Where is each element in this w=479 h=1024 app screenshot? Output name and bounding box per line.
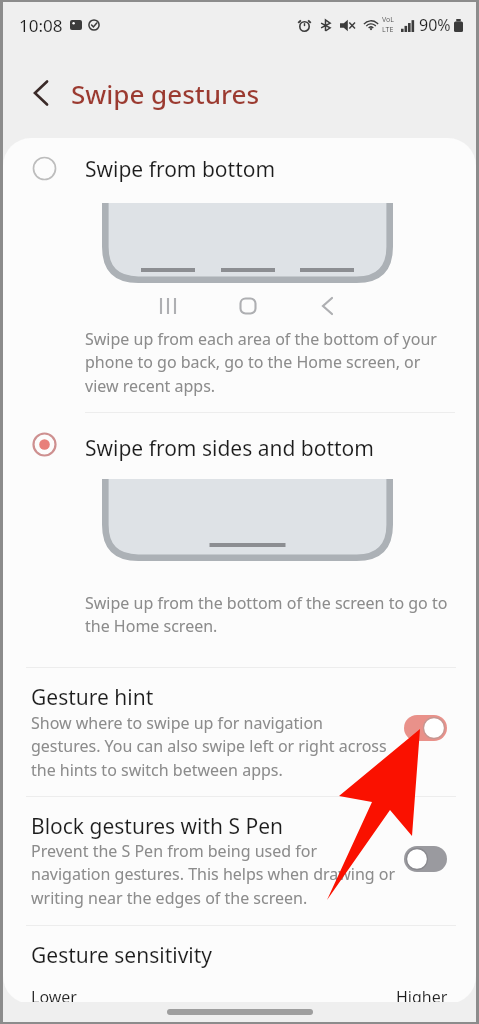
staticText: Block gestures with S Pen xyxy=(31,812,283,841)
button[interactable]: Gesture sensitivity xyxy=(3,926,476,955)
button[interactable]: Gesture hint xyxy=(3,668,476,796)
staticText: LTE xyxy=(382,25,394,35)
staticText: Swipe from bottom xyxy=(85,155,276,184)
staticText: Swipe up from each area of the bottom of… xyxy=(85,328,445,397)
staticText: Lower xyxy=(31,986,77,1004)
staticText: Prevent the S Pen from being used for na… xyxy=(31,840,397,909)
staticText: VoL xyxy=(382,15,394,25)
button[interactable]: Block gestures with S Pen xyxy=(3,797,476,929)
staticText: Swipe up from the bottom of the screen t… xyxy=(85,592,451,637)
staticText: Swipe from sides and bottom xyxy=(85,434,374,463)
button[interactable]: Swipe from bottom xyxy=(3,138,476,1004)
staticText: Gesture sensitivity xyxy=(31,941,213,970)
button[interactable]: Swipe from bottom xyxy=(3,138,476,411)
staticText: Swipe gestures xyxy=(71,76,260,111)
button[interactable]: Swipe from sides and bottom xyxy=(3,413,476,665)
staticText: Higher xyxy=(396,986,448,1004)
staticText: Show where to swipe up for navigation ge… xyxy=(31,712,389,781)
staticText: Gesture hint xyxy=(31,683,154,712)
staticText: 90% xyxy=(419,14,451,36)
staticText: 10:08 xyxy=(19,14,63,37)
button[interactable]: Back xyxy=(20,72,62,114)
